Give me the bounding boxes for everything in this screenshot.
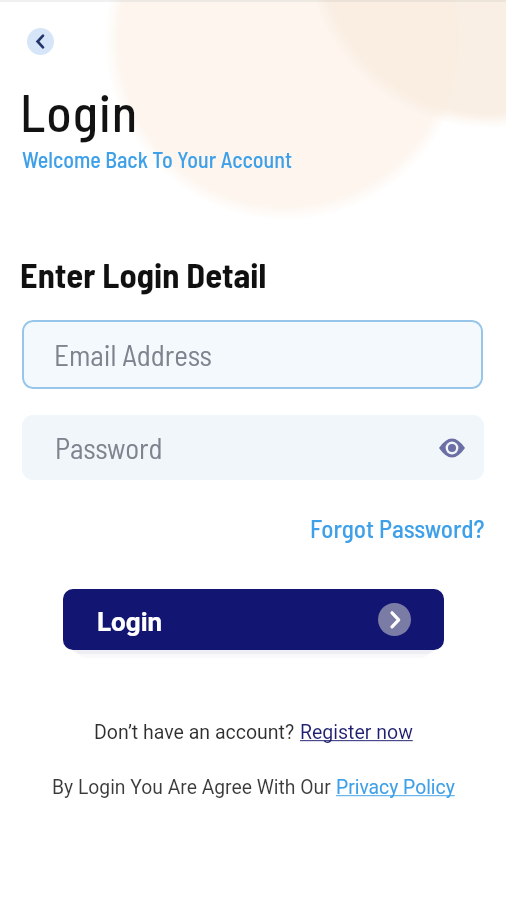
button[interactable]: Privacy Policy (336, 776, 455, 799)
staticText: Enter Login Detail (20, 253, 267, 294)
staticText: Login (97, 607, 163, 637)
staticText: Forgot Password? (310, 513, 485, 543)
button[interactable]: Forgot Password? (310, 513, 485, 543)
staticText: Privacy Policy (336, 776, 455, 799)
staticText: Password (55, 430, 163, 465)
button[interactable]: Login (63, 589, 444, 650)
button[interactable]: Email Address (22, 320, 483, 389)
staticText: Welcome Back To Your Account (22, 146, 293, 172)
staticText: Email Address (54, 337, 212, 372)
staticText: Don’t have an account? (94, 721, 300, 744)
button[interactable] (27, 28, 54, 55)
button[interactable]: Password (22, 415, 484, 480)
staticText: By Login You Are Agree With Our (52, 776, 336, 799)
button[interactable]: Register now (300, 721, 413, 744)
staticText: Register now (300, 721, 413, 744)
staticText: Login (20, 80, 139, 142)
